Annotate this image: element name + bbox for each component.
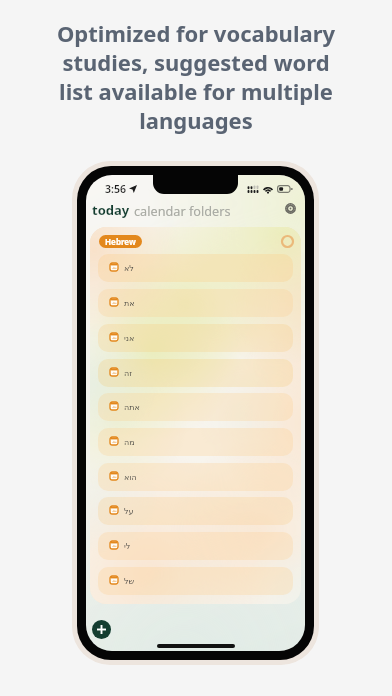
staticText: אתה xyxy=(124,403,140,412)
staticText: לא xyxy=(124,264,134,273)
staticText: את xyxy=(124,299,135,308)
staticText: Hebrew xyxy=(105,236,136,247)
button[interactable]: אני xyxy=(98,324,293,352)
staticText: today xyxy=(92,201,130,219)
button[interactable]: Settings xyxy=(282,200,298,216)
button[interactable]: today xyxy=(91,201,131,219)
staticText: מה xyxy=(124,438,135,447)
button[interactable]: אתה xyxy=(98,393,293,421)
staticText: folders xyxy=(189,202,231,219)
staticText: על xyxy=(124,507,134,516)
button[interactable]: Hebrew xyxy=(99,235,142,248)
button[interactable]: folders xyxy=(188,202,232,219)
staticText: Optimized for vocabulary studies, sugges… xyxy=(50,18,342,135)
staticText: של xyxy=(124,577,135,586)
button[interactable]: Add word xyxy=(92,620,111,639)
button[interactable]: calendar xyxy=(133,202,187,219)
button[interactable]: את xyxy=(98,289,293,317)
button[interactable]: Select all xyxy=(281,235,294,248)
staticText: calendar xyxy=(134,202,186,219)
staticText: אני xyxy=(124,334,135,343)
button[interactable]: של xyxy=(98,567,293,595)
button[interactable]: לא xyxy=(98,254,293,282)
button[interactable]: זה xyxy=(98,359,293,387)
staticText: 3:56 xyxy=(105,182,126,196)
button[interactable]: על xyxy=(98,497,293,525)
button[interactable]: הוא xyxy=(98,463,293,491)
button[interactable]: לי xyxy=(98,532,293,560)
staticText: הוא xyxy=(124,473,137,482)
button[interactable]: מה xyxy=(98,428,293,456)
staticText: זה xyxy=(124,369,132,378)
staticText: לי xyxy=(124,542,131,551)
